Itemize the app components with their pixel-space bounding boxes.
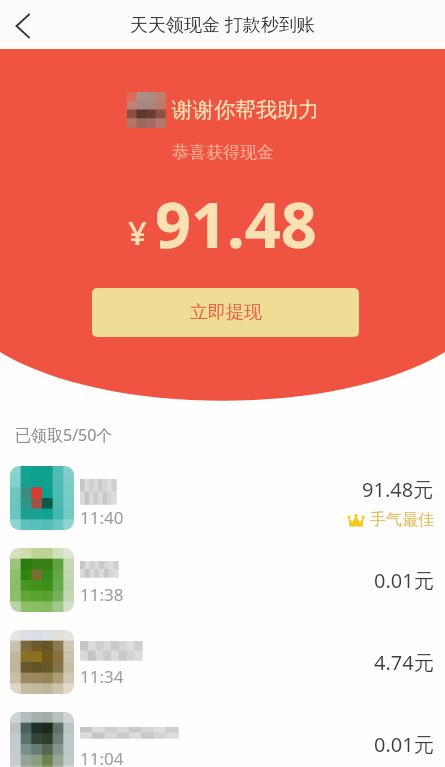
staticText: 91.48 bbox=[155, 181, 317, 267]
button[interactable]: 11:38 bbox=[0, 539, 445, 621]
button[interactable]: 11:34 bbox=[0, 621, 445, 703]
staticText: 11:04 bbox=[80, 747, 124, 767]
staticText: 0.01元 bbox=[374, 567, 434, 594]
button[interactable]: 11:40 bbox=[0, 457, 445, 539]
staticText: 已领取5/50个 bbox=[15, 424, 113, 446]
staticText: 0.01元 bbox=[374, 731, 434, 758]
staticText: 11:40 bbox=[80, 506, 124, 529]
staticText: 天天领现金 打款秒到账 bbox=[130, 12, 315, 37]
staticText: 91.48元 bbox=[362, 476, 434, 503]
staticText: ¥ bbox=[128, 210, 147, 255]
button[interactable]: 立即提现 bbox=[92, 288, 359, 337]
staticText: 恭喜获得现金 bbox=[172, 142, 274, 163]
staticText: 4.74元 bbox=[374, 649, 434, 676]
staticText: 11:34 bbox=[80, 665, 124, 688]
staticText: 谢谢你帮我助力 bbox=[172, 97, 319, 123]
staticText: 立即提现 bbox=[190, 301, 262, 324]
button[interactable]: 11:04 bbox=[0, 703, 445, 767]
staticText: 11:38 bbox=[80, 583, 124, 606]
button[interactable]: Back bbox=[0, 2, 46, 48]
staticText: 手气最佳 bbox=[370, 510, 434, 530]
